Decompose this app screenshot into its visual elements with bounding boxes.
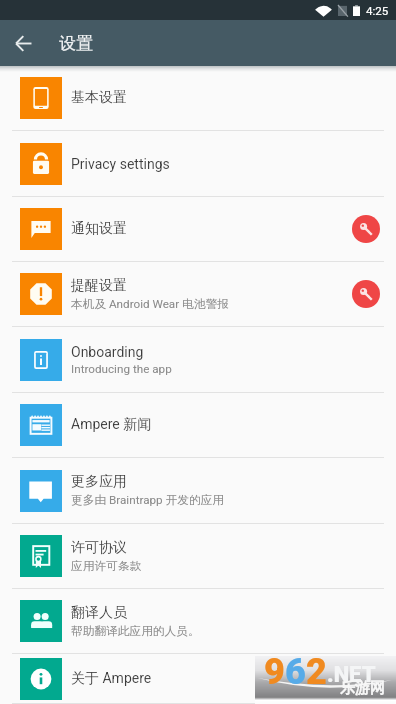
- staticText: 通知设置: [71, 220, 127, 238]
- staticText: 6: [285, 651, 306, 693]
- staticText: 翻译人员: [71, 604, 127, 622]
- button[interactable]: Onboarding: [0, 327, 396, 393]
- staticText: .NET: [327, 662, 376, 688]
- button[interactable]: Unlock premium: [352, 280, 380, 308]
- staticText: 应用许可条款: [71, 559, 142, 574]
- button[interactable]: 更多应用: [0, 458, 396, 524]
- staticText: 更多由 Braintrapp 开发的应用: [71, 493, 225, 508]
- button[interactable]: 基本设置: [0, 66, 396, 131]
- button[interactable]: 关于 Ampere: [0, 654, 396, 704]
- staticText: 设置: [59, 33, 93, 54]
- staticText: Onboarding: [71, 344, 144, 360]
- button[interactable]: Privacy settings: [0, 131, 396, 197]
- staticText: 乐游网: [340, 679, 385, 698]
- staticText: 提醒设置: [71, 277, 127, 295]
- staticText: 2: [306, 651, 327, 693]
- staticText: 基本设置: [71, 89, 127, 107]
- button[interactable]: 提醒设置: [0, 262, 396, 327]
- staticText: 更多应用: [71, 473, 127, 491]
- staticText: Ampere 新闻: [71, 416, 152, 434]
- staticText: 关于 Ampere: [71, 670, 152, 688]
- button[interactable]: Back: [0, 20, 46, 66]
- button[interactable]: Unlock premium: [352, 215, 380, 243]
- staticText: 许可协议: [71, 539, 127, 557]
- button[interactable]: Ampere 新闻: [0, 393, 396, 458]
- button[interactable]: 许可协议: [0, 524, 396, 589]
- staticText: 9: [264, 651, 285, 693]
- staticText: Privacy settings: [71, 156, 170, 172]
- button[interactable]: 通知设置: [0, 197, 396, 262]
- staticText: 4:25: [366, 4, 389, 17]
- staticText: 帮助翻译此应用的人员。: [71, 624, 200, 639]
- staticText: 本机及 Android Wear 电池警报: [71, 297, 229, 312]
- button[interactable]: 翻译人员: [0, 589, 396, 654]
- staticText: Introducing the app: [71, 362, 172, 376]
